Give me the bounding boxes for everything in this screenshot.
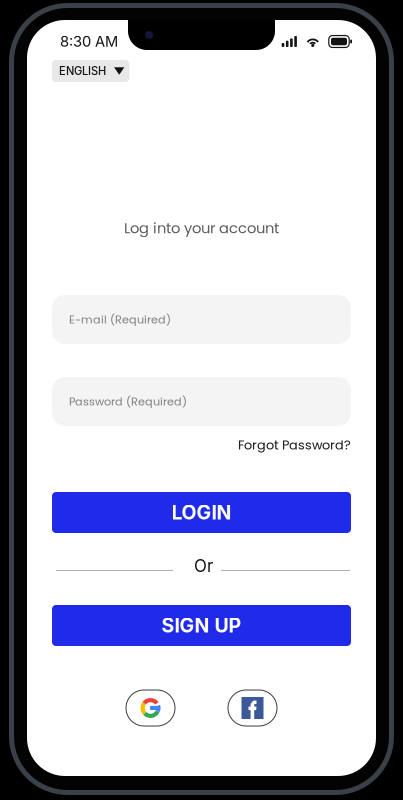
button[interactable]: LOGIN: [52, 492, 351, 533]
button[interactable]: Continue with Facebook: [228, 690, 277, 726]
staticText: Forgot Password?: [238, 436, 351, 454]
staticText: ENGLISH: [59, 64, 106, 78]
button[interactable]: ENGLISH: [52, 60, 129, 82]
button[interactable]: Continue with Google: [126, 690, 175, 726]
staticText: SIGN UP: [161, 614, 241, 637]
staticText: E-mail (Required): [69, 312, 171, 327]
staticText: LOGIN: [171, 501, 231, 524]
button[interactable]: SIGN UP: [52, 605, 351, 646]
staticText: Log into your account: [124, 218, 279, 238]
button[interactable]: Forgot Password?: [238, 436, 351, 454]
staticText: 8:30 AM: [60, 33, 118, 50]
staticText: Or: [194, 556, 213, 576]
staticText: Password (Required): [69, 394, 187, 409]
